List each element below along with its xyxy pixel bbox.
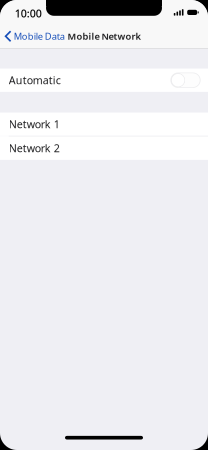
staticText: Mobile Data <box>14 30 65 42</box>
button[interactable]: Automatic <box>0 68 208 92</box>
button[interactable]: Network 2 <box>0 136 208 160</box>
staticText: 10:00 <box>15 6 42 20</box>
staticText: Network 2 <box>9 141 60 155</box>
staticText: Network 1 <box>9 117 60 131</box>
button[interactable]: Mobile Data <box>0 25 68 47</box>
staticText: Mobile Network <box>67 30 140 42</box>
staticText: Automatic <box>9 73 61 87</box>
button[interactable]: Network 1 <box>0 112 208 136</box>
